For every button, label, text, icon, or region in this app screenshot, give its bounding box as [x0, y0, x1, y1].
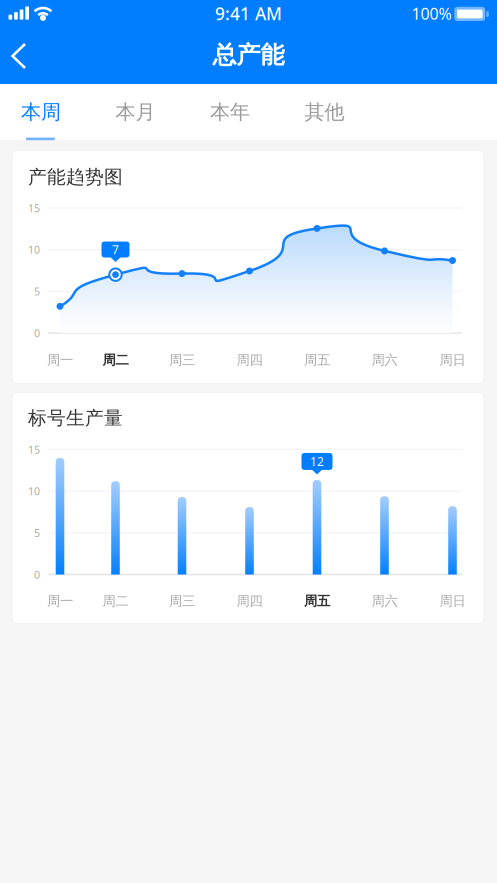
staticText: 15	[28, 442, 40, 457]
staticText: 12	[310, 453, 324, 469]
staticText: 周五	[304, 593, 330, 609]
staticText: 周日	[439, 352, 465, 368]
button[interactable]: 本年	[187, 86, 273, 138]
staticText: 5	[34, 526, 40, 540]
staticText: 周五	[304, 352, 330, 368]
staticText: 周六	[371, 352, 397, 368]
staticText: 周二	[102, 352, 128, 368]
staticText: 周三	[169, 593, 195, 609]
staticText: 10	[28, 243, 40, 257]
staticText: 100%	[411, 3, 451, 24]
staticText: 10	[28, 484, 40, 498]
staticText: 周二	[102, 593, 128, 609]
staticText: 本周	[21, 100, 61, 124]
staticText: 0	[34, 326, 40, 340]
staticText: 本年	[210, 100, 250, 124]
staticText: 周四	[236, 593, 262, 609]
staticText: 总产能	[212, 40, 284, 70]
staticText: 7	[112, 241, 119, 257]
button[interactable]: 本月	[92, 86, 178, 138]
staticText: 15	[28, 201, 40, 215]
staticText: 周日	[439, 593, 465, 609]
staticText: 周三	[169, 352, 195, 368]
staticText: 周一	[47, 593, 73, 609]
staticText: 周一	[47, 352, 73, 368]
staticText: 标号生产量	[28, 406, 123, 429]
button[interactable]: 其他	[281, 86, 367, 138]
staticText: 9:41 AM	[215, 2, 282, 25]
staticText: 其他	[304, 100, 344, 124]
staticText: 0	[34, 567, 40, 582]
staticText: 本月	[115, 100, 155, 124]
button[interactable]: 本周	[0, 86, 84, 138]
staticText: 产能趋势图	[28, 165, 123, 188]
staticText: 5	[34, 284, 40, 298]
staticText: 周四	[236, 352, 262, 368]
staticText: 周六	[371, 593, 397, 609]
button[interactable]: Back	[0, 28, 50, 84]
